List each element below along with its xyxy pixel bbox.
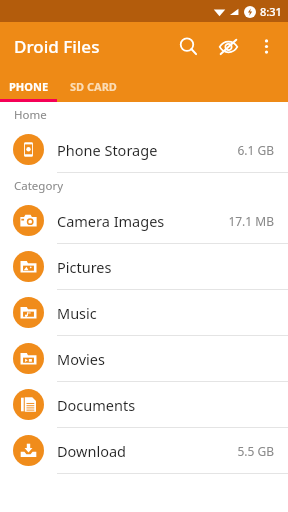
button[interactable]: Documents [0,382,288,427]
button[interactable]: Music [0,290,288,335]
staticText: 8:31 [260,4,282,19]
staticText: Home [14,107,47,123]
button[interactable]: Movies [0,336,288,381]
button[interactable]: PHONE [0,70,57,102]
button[interactable]: Show hidden files [208,26,248,66]
staticText: SD CARD [70,79,117,94]
staticText: Camera Images [57,211,228,231]
staticText: Droid Files [14,35,100,58]
staticText: PHONE [9,79,49,94]
button[interactable]: Camera Images [0,198,288,243]
button[interactable]: Phone Storage [0,127,288,172]
staticText: Pictures [57,257,274,277]
staticText: Music [57,303,274,323]
button[interactable]: Search [168,26,208,66]
staticText: Movies [57,349,274,369]
staticText: 6.1 GB [237,142,274,158]
staticText: 17.1 MB [228,213,274,229]
button[interactable]: SD CARD [57,70,129,102]
button[interactable]: Pictures [0,244,288,289]
staticText: Download [57,441,237,461]
staticText: Documents [57,395,274,415]
button[interactable]: More options [248,28,284,64]
button[interactable]: Download [0,428,288,473]
staticText: Phone Storage [57,140,237,160]
staticText: 5.5 GB [237,443,274,459]
staticText: Category [14,178,64,194]
